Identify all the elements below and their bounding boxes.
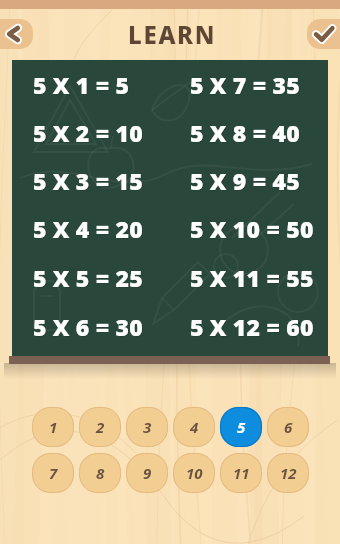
staticText: 5 X 12 = 60 — [190, 311, 314, 342]
staticText: 11 — [233, 463, 250, 483]
staticText: 10 — [186, 463, 203, 483]
button[interactable]: 8 — [79, 453, 121, 493]
button[interactable]: 1 — [32, 407, 74, 447]
staticText: 2 — [96, 417, 105, 437]
staticText: 5 X 3 = 15 — [33, 165, 143, 196]
button[interactable]: 10 — [173, 453, 215, 493]
staticText: 5 X 9 = 45 — [191, 166, 301, 197]
button[interactable]: Done — [307, 19, 340, 49]
button[interactable]: 6 — [267, 407, 309, 447]
staticText: 8 — [96, 463, 105, 483]
staticText: 5 X 11 = 55 — [190, 262, 314, 293]
staticText: 5 X 1 = 5 — [34, 70, 131, 101]
staticText: 4 — [190, 417, 199, 437]
staticText: 5 X 1 = 5 — [33, 69, 130, 100]
staticText: 5 X 7 = 35 — [190, 69, 300, 100]
staticText: 5 X 5 = 25 — [33, 262, 143, 293]
button[interactable]: 11 — [220, 453, 262, 493]
staticText: 5 X 3 = 15 — [34, 166, 144, 197]
staticText: 5 X 4 = 20 — [34, 214, 144, 245]
staticText: 5 X 9 = 45 — [190, 165, 300, 196]
button[interactable]: 3 — [126, 407, 168, 447]
staticText: 9 — [143, 463, 152, 483]
staticText: 5 X 6 = 30 — [33, 311, 143, 342]
staticText: 5 — [237, 417, 246, 437]
staticText: 3 — [143, 417, 152, 437]
staticText: 1 — [49, 417, 58, 437]
staticText: 5 X 7 = 35 — [191, 70, 301, 101]
staticText: 6 — [284, 417, 293, 437]
staticText: LEARN — [128, 18, 217, 51]
staticText: 5 X 8 = 40 — [191, 118, 301, 149]
button[interactable]: 4 — [173, 407, 215, 447]
staticText: 7 — [49, 463, 58, 483]
staticText: 5 X 2 = 10 — [33, 117, 143, 148]
button[interactable]: Back — [0, 19, 33, 49]
button[interactable]: 7 — [32, 453, 74, 493]
staticText: 5 X 6 = 30 — [34, 312, 144, 343]
button[interactable]: 9 — [126, 453, 168, 493]
staticText: 5 X 11 = 55 — [191, 263, 315, 294]
staticText: 5 X 10 = 50 — [190, 213, 314, 244]
button[interactable]: 5 — [220, 407, 262, 447]
staticText: 12 — [280, 463, 297, 483]
staticText: 5 X 8 = 40 — [190, 117, 300, 148]
staticText: 5 X 12 = 60 — [191, 312, 315, 343]
staticText: 5 X 4 = 20 — [33, 213, 143, 244]
button[interactable]: 12 — [267, 453, 309, 493]
staticText: 5 X 2 = 10 — [34, 118, 144, 149]
staticText: 5 X 10 = 50 — [191, 214, 315, 245]
staticText: 5 X 5 = 25 — [34, 263, 144, 294]
button[interactable]: 2 — [79, 407, 121, 447]
